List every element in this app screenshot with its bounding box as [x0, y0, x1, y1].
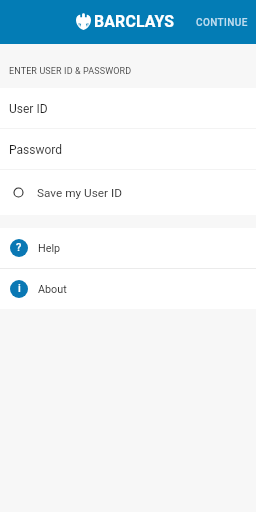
button[interactable]: User ID [0, 88, 256, 128]
staticText: CONTINUE [196, 17, 248, 29]
staticText: ENTER USER ID & PASSWORD [9, 66, 132, 77]
staticText: User ID [9, 102, 48, 116]
staticText: ? [16, 241, 22, 254]
button[interactable]: CONTINUE [184, 5, 256, 39]
staticText: i [18, 282, 21, 295]
other: Help [10, 239, 28, 257]
staticText: Password [9, 143, 63, 157]
button[interactable]: About [0, 269, 256, 309]
staticText: Help [38, 242, 61, 255]
staticText: Save my User ID [37, 186, 122, 200]
button[interactable]: Help [0, 228, 256, 268]
button[interactable]: Password [0, 129, 256, 169]
staticText: About [38, 283, 67, 296]
button[interactable]: Save my User ID [0, 170, 256, 215]
other: About [10, 280, 28, 298]
staticText: BARCLAYS [94, 12, 175, 31]
